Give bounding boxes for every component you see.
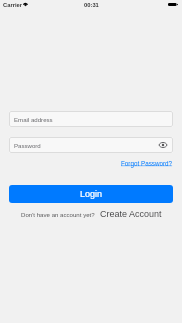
staticText: 00:31 xyxy=(84,2,99,8)
button[interactable]: Email address xyxy=(9,111,173,127)
staticText: Password xyxy=(14,142,41,149)
other: Battery xyxy=(168,3,178,6)
button[interactable]: Create Account xyxy=(100,209,162,219)
staticText: Email address xyxy=(14,116,53,123)
other: Wi-Fi xyxy=(23,2,28,6)
button[interactable]: Forgot Password? xyxy=(121,160,182,167)
other: Show password xyxy=(159,142,167,148)
staticText: Carrier xyxy=(3,2,23,8)
button[interactable]: Password xyxy=(9,137,173,153)
staticText: Login xyxy=(80,189,103,199)
staticText: Create Account xyxy=(100,209,162,219)
button[interactable]: Login xyxy=(9,185,173,203)
staticText: Don't have an account yet? xyxy=(21,211,95,218)
staticText: Forgot Password? xyxy=(121,160,173,167)
